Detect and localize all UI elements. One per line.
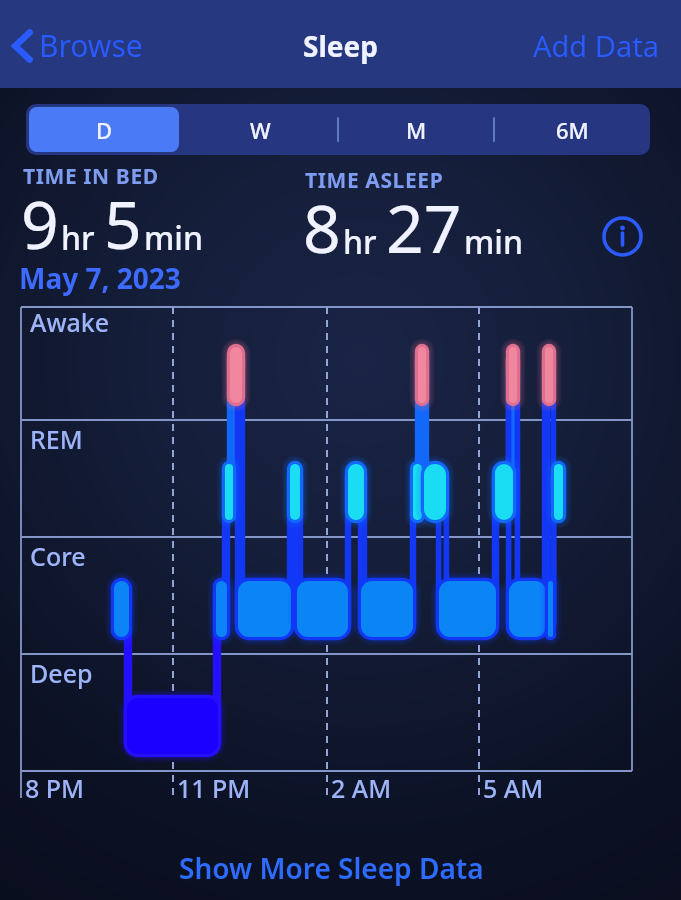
button[interactable]: D (29, 107, 179, 152)
staticText: min (464, 220, 524, 264)
staticText: 8 PM (25, 771, 85, 805)
staticText: 9 (21, 178, 59, 268)
staticText: Add Data (533, 26, 659, 65)
staticText: Browse (39, 25, 143, 66)
staticText: Show More Sleep Data (179, 849, 484, 887)
staticText: 5 AM (483, 771, 544, 805)
staticText: Deep (30, 656, 93, 690)
staticText: TIME ASLEEP (305, 166, 444, 195)
staticText: 27 (386, 182, 462, 272)
staticText: TIME IN BED (23, 162, 159, 191)
staticText: Awake (30, 305, 110, 339)
staticText: W (250, 115, 271, 145)
button[interactable]: M (341, 107, 491, 152)
button[interactable]: W (185, 107, 335, 152)
staticText: M (406, 115, 427, 145)
button[interactable]: Show More Sleep Data (169, 843, 494, 893)
staticText: Core (30, 539, 86, 573)
staticText: hr (343, 220, 377, 264)
staticText: min (144, 216, 204, 260)
staticText: 2 AM (331, 771, 392, 805)
button[interactable]: Browse (4, 21, 149, 70)
staticText: hr (61, 216, 95, 260)
button[interactable]: 6M (497, 107, 647, 152)
staticText: May 7, 2023 (19, 259, 181, 297)
staticText: Sleep (303, 27, 378, 65)
staticText: 8 (303, 182, 341, 272)
staticText: 5 (104, 178, 142, 268)
button[interactable]: Information (600, 214, 644, 258)
staticText: D (96, 115, 113, 145)
staticText: 11 PM (177, 771, 251, 805)
button[interactable]: Add Data (527, 22, 665, 69)
staticText: 6M (556, 115, 589, 145)
staticText: REM (30, 422, 83, 456)
